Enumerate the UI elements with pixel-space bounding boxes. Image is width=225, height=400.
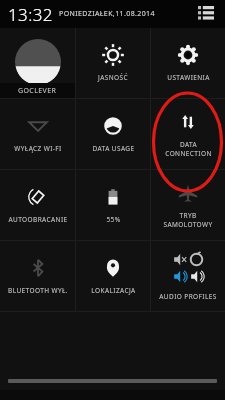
staticText: BLUETOOTH WYŁ. (8, 286, 68, 295)
button[interactable]: TRYB SAMOLOTOWY (151, 170, 225, 240)
button[interactable]: AUTOOBRACANIE (0, 170, 75, 240)
button[interactable]: DATA USAGE (76, 99, 150, 169)
button[interactable]: Notifications list (195, 3, 217, 25)
button[interactable]: AUDIO PROFILES (151, 241, 225, 311)
button[interactable]: LOKALIZACJA (76, 241, 150, 311)
staticText: WYŁĄCZ WI-FI (14, 144, 62, 153)
button[interactable]: GOCLEVER (0, 28, 75, 98)
staticText: DATA USAGE (92, 144, 135, 153)
staticText: AUDIO PROFILES (159, 292, 217, 301)
staticText: LOKALIZACJA (91, 286, 136, 295)
staticText: DATA CONNECTION (165, 140, 212, 158)
button[interactable]: DATA CONNECTION (151, 99, 225, 169)
staticText: PONIEDZIAŁEK,11.08.2014 (59, 9, 155, 19)
button[interactable]: WYŁĄCZ WI-FI (0, 99, 75, 169)
button[interactable]: USTAWIENIA (151, 28, 225, 98)
staticText: GOCLEVER (18, 86, 57, 96)
button[interactable]: 55% (76, 170, 150, 240)
staticText: TRYB SAMOLOTOWY (163, 211, 213, 229)
staticText: JASNOŚĆ (98, 73, 128, 82)
staticText: USTAWIENIA (167, 73, 210, 82)
staticText: AUTOOBRACANIE (8, 215, 68, 224)
staticText: 55% (106, 215, 121, 224)
staticText: 13:32 (8, 3, 53, 26)
button[interactable]: JASNOŚĆ (76, 28, 150, 98)
button[interactable]: BLUETOOTH WYŁ. (0, 241, 75, 311)
